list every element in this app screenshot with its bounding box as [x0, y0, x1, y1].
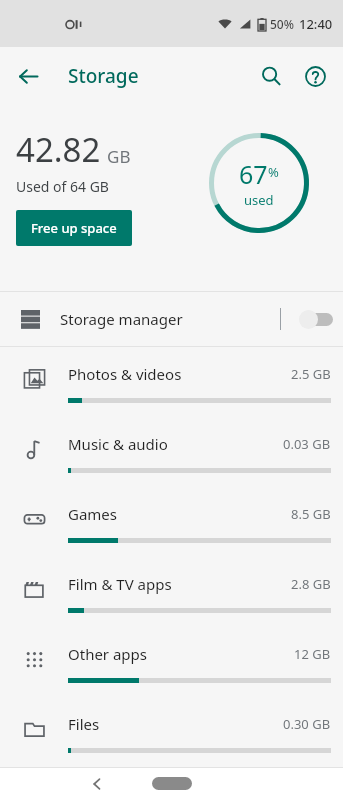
staticText: Photos & videos — [68, 364, 291, 384]
button[interactable]: Other apps — [0, 627, 343, 697]
staticText: 0.03 GB — [283, 435, 331, 453]
staticText: GB — [107, 145, 131, 168]
button[interactable]: Back — [8, 56, 48, 96]
button[interactable]: Free up space — [16, 210, 132, 246]
staticText: 67 — [239, 157, 268, 191]
staticText: % — [268, 163, 279, 181]
staticText: Other apps — [68, 644, 294, 664]
staticText: Storage manager — [60, 309, 280, 329]
staticText: 8.5 GB — [291, 505, 331, 523]
staticText: 2.8 GB — [291, 575, 331, 593]
staticText: Music & audio — [68, 434, 283, 454]
button[interactable]: Storage manager — [0, 292, 343, 346]
staticText: 12 GB — [294, 645, 331, 663]
staticText: Files — [68, 714, 283, 734]
button[interactable]: Film & TV apps — [0, 557, 343, 627]
button[interactable]: Music & audio — [0, 417, 343, 487]
staticText: Used of 64 GB — [16, 177, 109, 196]
staticText: 2.5 GB — [291, 365, 331, 383]
button[interactable]: Back — [78, 768, 116, 800]
staticText: 12:40 — [299, 15, 333, 33]
staticText: used — [244, 191, 274, 209]
button[interactable]: Storage manager toggle — [281, 292, 343, 346]
staticText: Free up space — [31, 219, 117, 237]
button[interactable]: Files — [0, 697, 343, 767]
staticText: Storage — [68, 63, 139, 89]
staticText: Games — [68, 504, 291, 524]
staticText: 42.82 — [16, 127, 101, 172]
button[interactable]: Search — [251, 56, 291, 96]
button[interactable]: Home — [152, 777, 192, 790]
button[interactable]: Games — [0, 487, 343, 557]
button[interactable]: Photos & videos — [0, 347, 343, 417]
staticText: 50% — [270, 16, 294, 32]
button[interactable]: Help — [295, 56, 335, 96]
staticText: 0.30 GB — [283, 715, 331, 733]
staticText: Film & TV apps — [68, 574, 291, 594]
